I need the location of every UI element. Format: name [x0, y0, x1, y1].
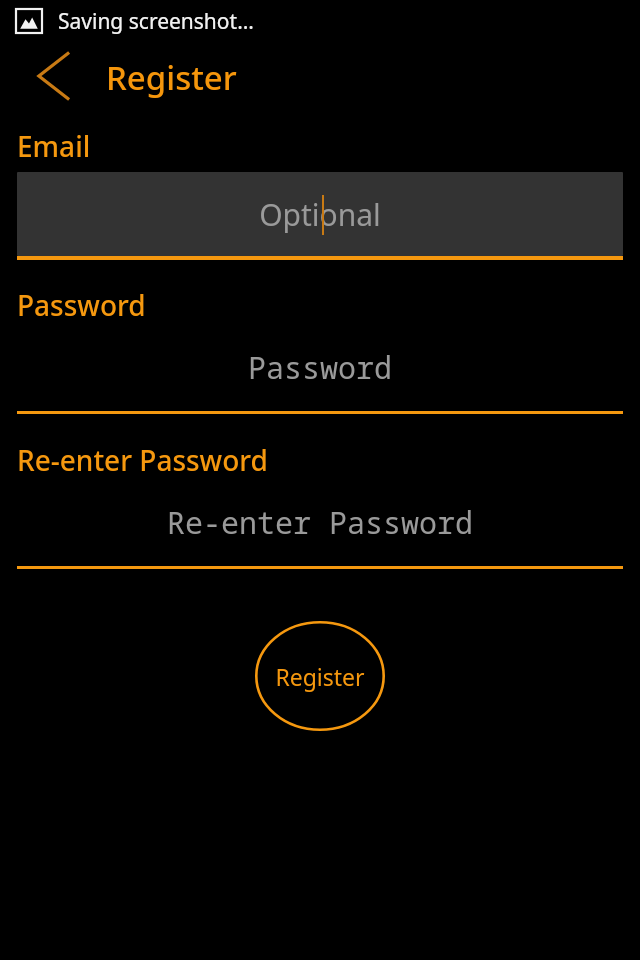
staticText: Email [17, 127, 91, 165]
button[interactable]: Back [26, 45, 82, 107]
button[interactable]: Register [255, 621, 385, 731]
staticText: Register [275, 661, 365, 692]
button[interactable]: Re-enter Password [17, 479, 623, 569]
staticText: Re-enter Password [17, 441, 268, 479]
staticText: Optional [259, 194, 381, 235]
staticText: Register [106, 55, 237, 100]
staticText: Saving screenshot… [58, 7, 254, 36]
button[interactable]: Password [17, 324, 623, 414]
staticText: Password [17, 286, 146, 324]
staticText: Password [248, 347, 392, 388]
staticText: Re-enter Password [167, 502, 473, 543]
other: Screenshot [16, 9, 42, 33]
button[interactable]: Optional [17, 172, 623, 260]
